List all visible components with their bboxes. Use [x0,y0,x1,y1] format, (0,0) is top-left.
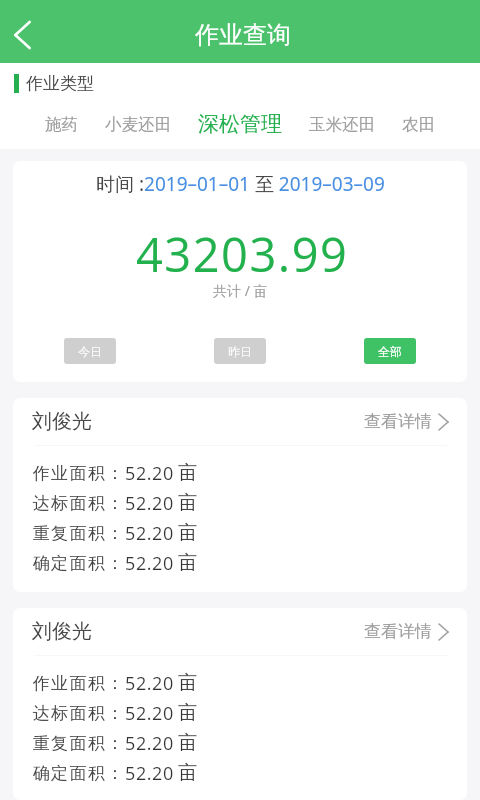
staticText: 施药 [45,114,78,135]
button[interactable]: 农田 [400,108,437,141]
staticText: 达标面积： [32,493,124,514]
staticText: 52.20 [125,671,174,696]
staticText: 52.20 [125,521,174,546]
staticText: 亩 [178,701,197,725]
button[interactable]: 施药 [43,108,80,141]
staticText: 重复面积： [32,523,124,544]
staticText: 亩 [178,461,197,485]
button[interactable]: 小麦还田 [103,108,173,141]
staticText: 亩 [178,491,197,515]
staticText: 作业面积： [32,673,124,694]
staticText: 玉米还田 [309,114,375,135]
button[interactable]: 玉米还田 [307,108,377,141]
staticText: 52.20 [125,701,174,726]
staticText: 重复面积： [32,733,124,754]
staticText: 刘俊光 [32,409,92,434]
staticText: 小麦还田 [105,114,171,135]
button[interactable]: 全部 [364,338,416,364]
staticText: 确定面积： [32,553,124,574]
staticText: 时间 :2019–01–01 至 2019–03–09 [96,171,385,197]
staticText: 全部 [378,344,402,359]
staticText: 深松管理 [198,111,282,137]
staticText: 亩 [178,731,197,755]
staticText: 共计 / 亩 [213,281,268,300]
staticText: 亩 [178,671,197,695]
staticText: 亩 [178,521,197,545]
staticText: 确定面积： [32,763,124,784]
staticText: 52.20 [125,731,174,756]
button[interactable]: 深松管理 [196,105,284,143]
button[interactable]: 今日 [64,338,116,364]
staticText: 今日 [78,344,102,359]
staticText: 查看详情 [364,411,432,432]
button[interactable]: 刘俊光 [13,398,467,592]
staticText: 作业查询 [195,20,291,50]
staticText: 昨日 [228,344,252,359]
staticText: 农田 [402,114,435,135]
staticText: 52.20 [125,491,174,516]
button[interactable]: 昨日 [214,338,266,364]
staticText: 52.20 [125,461,174,486]
staticText: 52.20 [125,761,174,786]
staticText: 亩 [178,761,197,785]
staticText: 查看详情 [364,621,432,642]
button[interactable]: Back [0,0,48,63]
staticText: 刘俊光 [32,619,92,644]
staticText: 作业面积： [32,463,124,484]
staticText: 亩 [178,551,197,575]
staticText: 52.20 [125,551,174,576]
button[interactable]: 刘俊光 [13,608,467,800]
staticText: 达标面积： [32,703,124,724]
staticText: 作业类型 [26,73,94,94]
staticText: 43203.99 [136,222,349,286]
